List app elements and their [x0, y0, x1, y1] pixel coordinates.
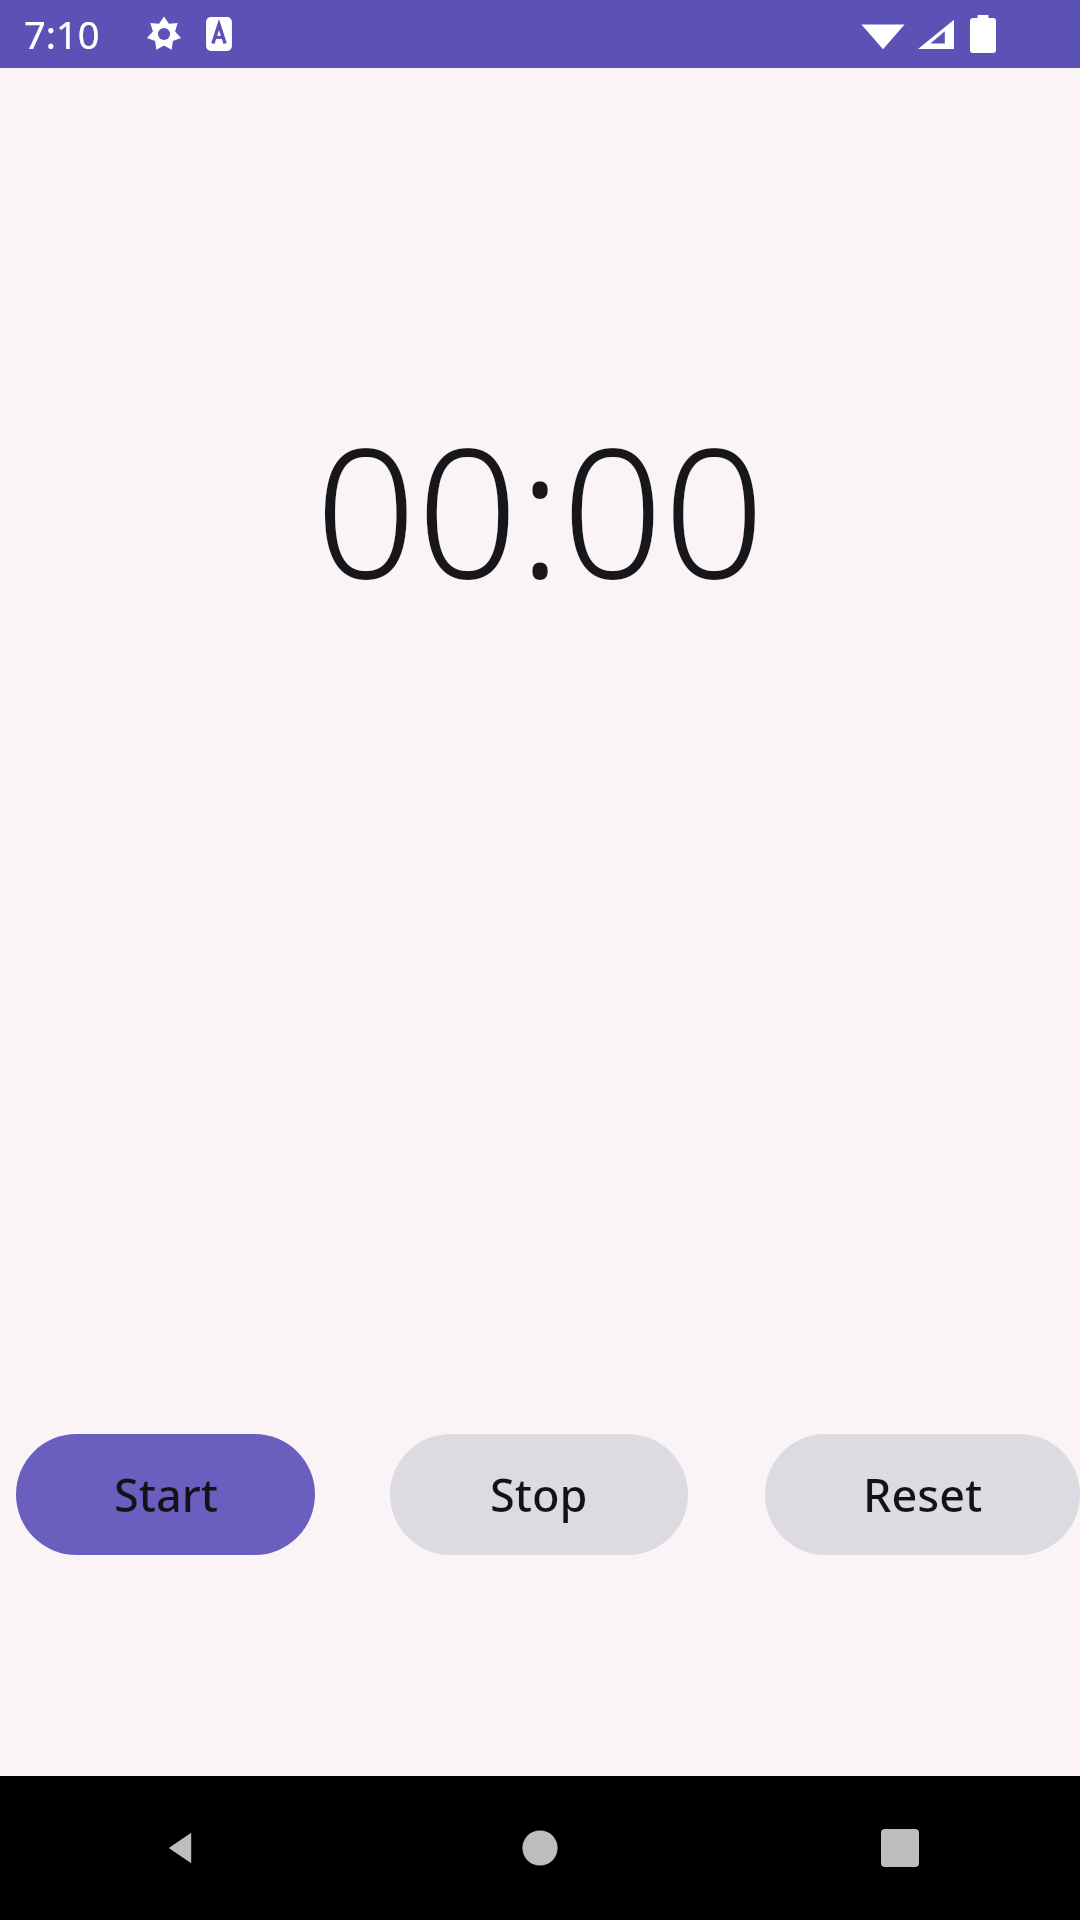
staticText: Stop: [490, 1464, 588, 1525]
button[interactable]: Back: [0, 1776, 360, 1920]
button[interactable]: Home: [360, 1776, 720, 1920]
staticText: 00:00: [315, 388, 765, 630]
button[interactable]: Start: [16, 1434, 315, 1555]
staticText: Reset: [863, 1464, 983, 1525]
button[interactable]: Stop: [390, 1434, 688, 1555]
button[interactable]: Reset: [765, 1434, 1080, 1555]
staticText: Start: [114, 1464, 218, 1525]
staticText: 7:10: [24, 8, 100, 60]
button[interactable]: Recent apps: [720, 1776, 1080, 1920]
